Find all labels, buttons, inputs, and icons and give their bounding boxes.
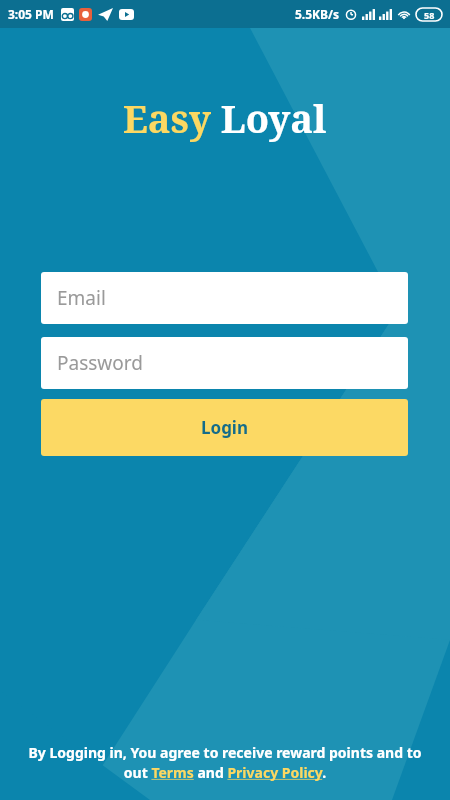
staticText: Password <box>57 350 143 376</box>
button[interactable]: Password <box>41 337 408 389</box>
staticText: 58 <box>424 9 435 21</box>
staticText: Easy Loyal <box>123 92 327 144</box>
staticText: By Logging in, You agree to receive rewa… <box>20 743 430 782</box>
staticText: 5.5KB/s <box>295 6 340 22</box>
staticText: Login <box>201 416 249 439</box>
button[interactable]: Login <box>41 399 408 456</box>
staticText: 3:05 PM <box>8 6 54 22</box>
staticText: Email <box>57 285 106 311</box>
button[interactable]: Email <box>41 272 408 324</box>
